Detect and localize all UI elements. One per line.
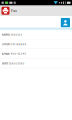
button[interactable]: 未接来电 1390123 <box>0 30 72 39</box>
staticText: 未接来电 1390123 <box>2 33 23 36</box>
button[interactable]: 客户服务 400-12345 <box>0 49 72 59</box>
button[interactable]: 张经理 138001380 <box>0 59 72 68</box>
button[interactable]: 公司传真 010-88889 <box>0 39 72 49</box>
staticText: 客户服务 400-12345 <box>2 52 26 55</box>
staticText: 张经理 138001380 <box>2 62 25 65</box>
staticText: Fax <box>11 9 17 13</box>
button[interactable]: Contacts <box>61 17 70 26</box>
staticText: 公司传真 010-88889 <box>2 43 27 46</box>
